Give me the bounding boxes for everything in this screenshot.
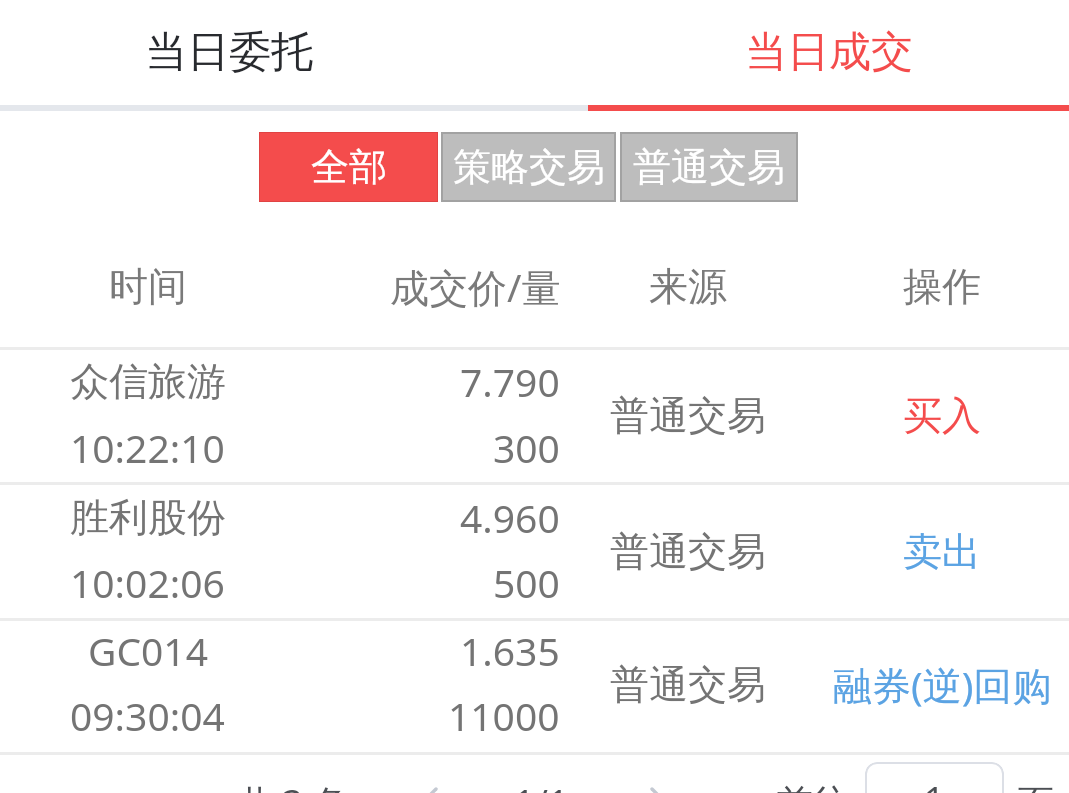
staticText: 11000: [448, 689, 560, 742]
button[interactable]: [0, 483, 1069, 618]
staticText: 当日成交: [745, 26, 913, 79]
button[interactable]: 策略交易: [443, 134, 614, 200]
staticText: 09:30:04: [70, 689, 225, 742]
staticText: 1/1: [514, 778, 569, 793]
staticText: 普通交易: [633, 143, 785, 191]
staticText: 10:02:06: [70, 556, 225, 609]
button[interactable]: 全部: [260, 133, 437, 201]
staticText: 策略交易: [453, 143, 605, 191]
staticText: 胜利股份: [70, 493, 226, 542]
staticText: 卖出: [903, 527, 981, 576]
button[interactable]: 1: [865, 762, 1004, 793]
button[interactable]: 普通交易: [622, 134, 796, 200]
staticText: 1.635: [460, 624, 560, 677]
staticText: 300: [493, 421, 560, 474]
staticText: 前往: [777, 780, 849, 793]
staticText: 共 3 条: [237, 778, 349, 793]
staticText: 页: [1018, 780, 1054, 793]
staticText: 1: [924, 775, 945, 793]
button[interactable]: [0, 619, 1069, 752]
staticText: 买入: [903, 391, 981, 440]
button[interactable]: 当日成交: [588, 0, 1069, 104]
staticText: 时间: [109, 262, 187, 311]
staticText: 500: [493, 556, 560, 609]
staticText: GC014: [88, 624, 208, 677]
button[interactable]: Previous page: [401, 768, 457, 793]
staticText: 普通交易: [610, 660, 766, 709]
button[interactable]: 当日委托: [0, 0, 458, 104]
staticText: 10:22:10: [70, 421, 225, 474]
staticText: 融券(逆)回购: [833, 658, 1052, 711]
button[interactable]: Next page: [635, 768, 691, 793]
staticText: 4.960: [460, 491, 560, 544]
staticText: 普通交易: [610, 391, 766, 440]
staticText: 成交价/量: [390, 260, 561, 313]
staticText: 全部: [311, 143, 387, 191]
staticText: 当日委托: [145, 26, 313, 79]
staticText: 操作: [903, 262, 981, 311]
staticText: 普通交易: [610, 527, 766, 576]
staticText: 众信旅游: [70, 357, 226, 406]
staticText: 来源: [649, 262, 727, 311]
staticText: 7.790: [460, 355, 560, 408]
button[interactable]: [0, 347, 1069, 482]
